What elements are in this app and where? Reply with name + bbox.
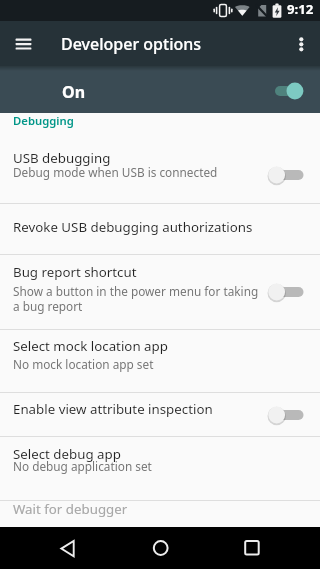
button[interactable]: On: [0, 66, 320, 113]
button[interactable]: [266, 160, 310, 190]
button[interactable]: [0, 330, 320, 393]
button[interactable]: [0, 203, 320, 254]
staticText: On: [62, 81, 86, 103]
staticText: No mock location app set: [13, 356, 154, 372]
staticText: Developer options: [61, 33, 202, 55]
staticText: Select debug app: [13, 445, 121, 463]
staticText: No debug application set: [13, 458, 152, 474]
staticText: Debugging: [13, 113, 74, 128]
staticText: 9:12: [287, 0, 314, 18]
staticText: Bug report shortcut: [13, 263, 137, 281]
staticText: USB debugging: [13, 149, 111, 167]
button[interactable]: [140, 531, 180, 565]
button[interactable]: [266, 277, 310, 307]
button[interactable]: [0, 393, 320, 437]
button[interactable]: [0, 437, 320, 501]
staticText: Enable view attribute inspection: [13, 400, 213, 418]
staticText: Select mock location app: [13, 337, 168, 355]
button[interactable]: [288, 23, 316, 64]
staticText: Show a button in the power menu for taki…: [13, 283, 259, 314]
button[interactable]: [0, 254, 320, 330]
button[interactable]: [46, 531, 86, 565]
button[interactable]: [0, 500, 320, 527]
button[interactable]: [266, 76, 310, 106]
staticText: Wait for debugger: [13, 500, 128, 518]
button[interactable]: [266, 400, 310, 430]
button[interactable]: [0, 140, 320, 203]
button[interactable]: [234, 531, 274, 565]
button[interactable]: [4, 23, 42, 64]
staticText: Debug mode when USB is connected: [13, 164, 218, 180]
staticText: Revoke USB debugging authorizations: [13, 218, 253, 236]
